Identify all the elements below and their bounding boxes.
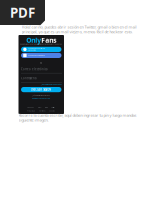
staticText: o	[40, 61, 42, 64]
staticText: CONTINUAR CON TWITTER	[28, 48, 45, 49]
staticText: Contraseña	[21, 76, 36, 80]
staticText: USC 2257	[27, 106, 34, 108]
staticText: Only	[26, 36, 41, 45]
staticText: Fans	[41, 36, 56, 45]
staticText: ¿Has olvidado la contraseña?	[41, 83, 62, 85]
staticText: Recorre la cuenta escribir, aquí deben i…	[18, 113, 136, 118]
staticText: ¿AÚN NO TIENES CUENTA?	[32, 95, 50, 96]
staticText: Privacidad	[27, 110, 35, 112]
button[interactable]: CONTINUAR CON GOOGLE	[21, 53, 61, 58]
button[interactable]: ¿Has olvidado la contraseña?	[21, 83, 62, 85]
staticText: Twitter	[51, 106, 55, 108]
staticText: MÁS RÁPIDO	[28, 49, 36, 51]
staticText: PDF	[10, 4, 35, 21]
staticText: DMCA	[37, 106, 41, 108]
staticText: Cookies	[49, 110, 55, 112]
staticText: Hola! cariño, puedes abrir sesión en Twi…	[21, 24, 136, 30]
staticText: CONTINUAR CON GOOGLE	[28, 54, 45, 56]
staticText: Términos	[39, 110, 46, 112]
staticText: siguiente imagen.	[18, 117, 48, 123]
button[interactable]: CONTINUAR CON TWITTER	[21, 47, 61, 52]
staticText: Blog	[45, 106, 48, 108]
staticText: principal, ya que es un mail viejero, me…	[21, 29, 132, 34]
staticText: Regístrate para ver el contenido exclusi…	[20, 43, 62, 45]
staticText: Registrarse con correo	[32, 98, 50, 99]
staticText: Correo electrónico	[21, 67, 48, 71]
button[interactable]: Registrarse con correo	[32, 98, 50, 99]
button[interactable]: INICIAR SESIÓN	[21, 87, 61, 92]
staticText: INICIAR SESIÓN	[31, 88, 51, 91]
